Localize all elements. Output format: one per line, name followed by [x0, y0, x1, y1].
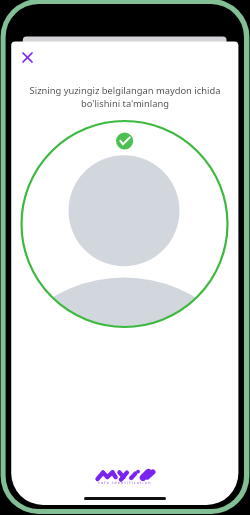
staticText: Sizning yuzingiz belgilangan maydon ichi… — [26, 84, 224, 109]
staticText: safe identification — [98, 480, 152, 485]
button[interactable]: Close — [13, 43, 41, 71]
